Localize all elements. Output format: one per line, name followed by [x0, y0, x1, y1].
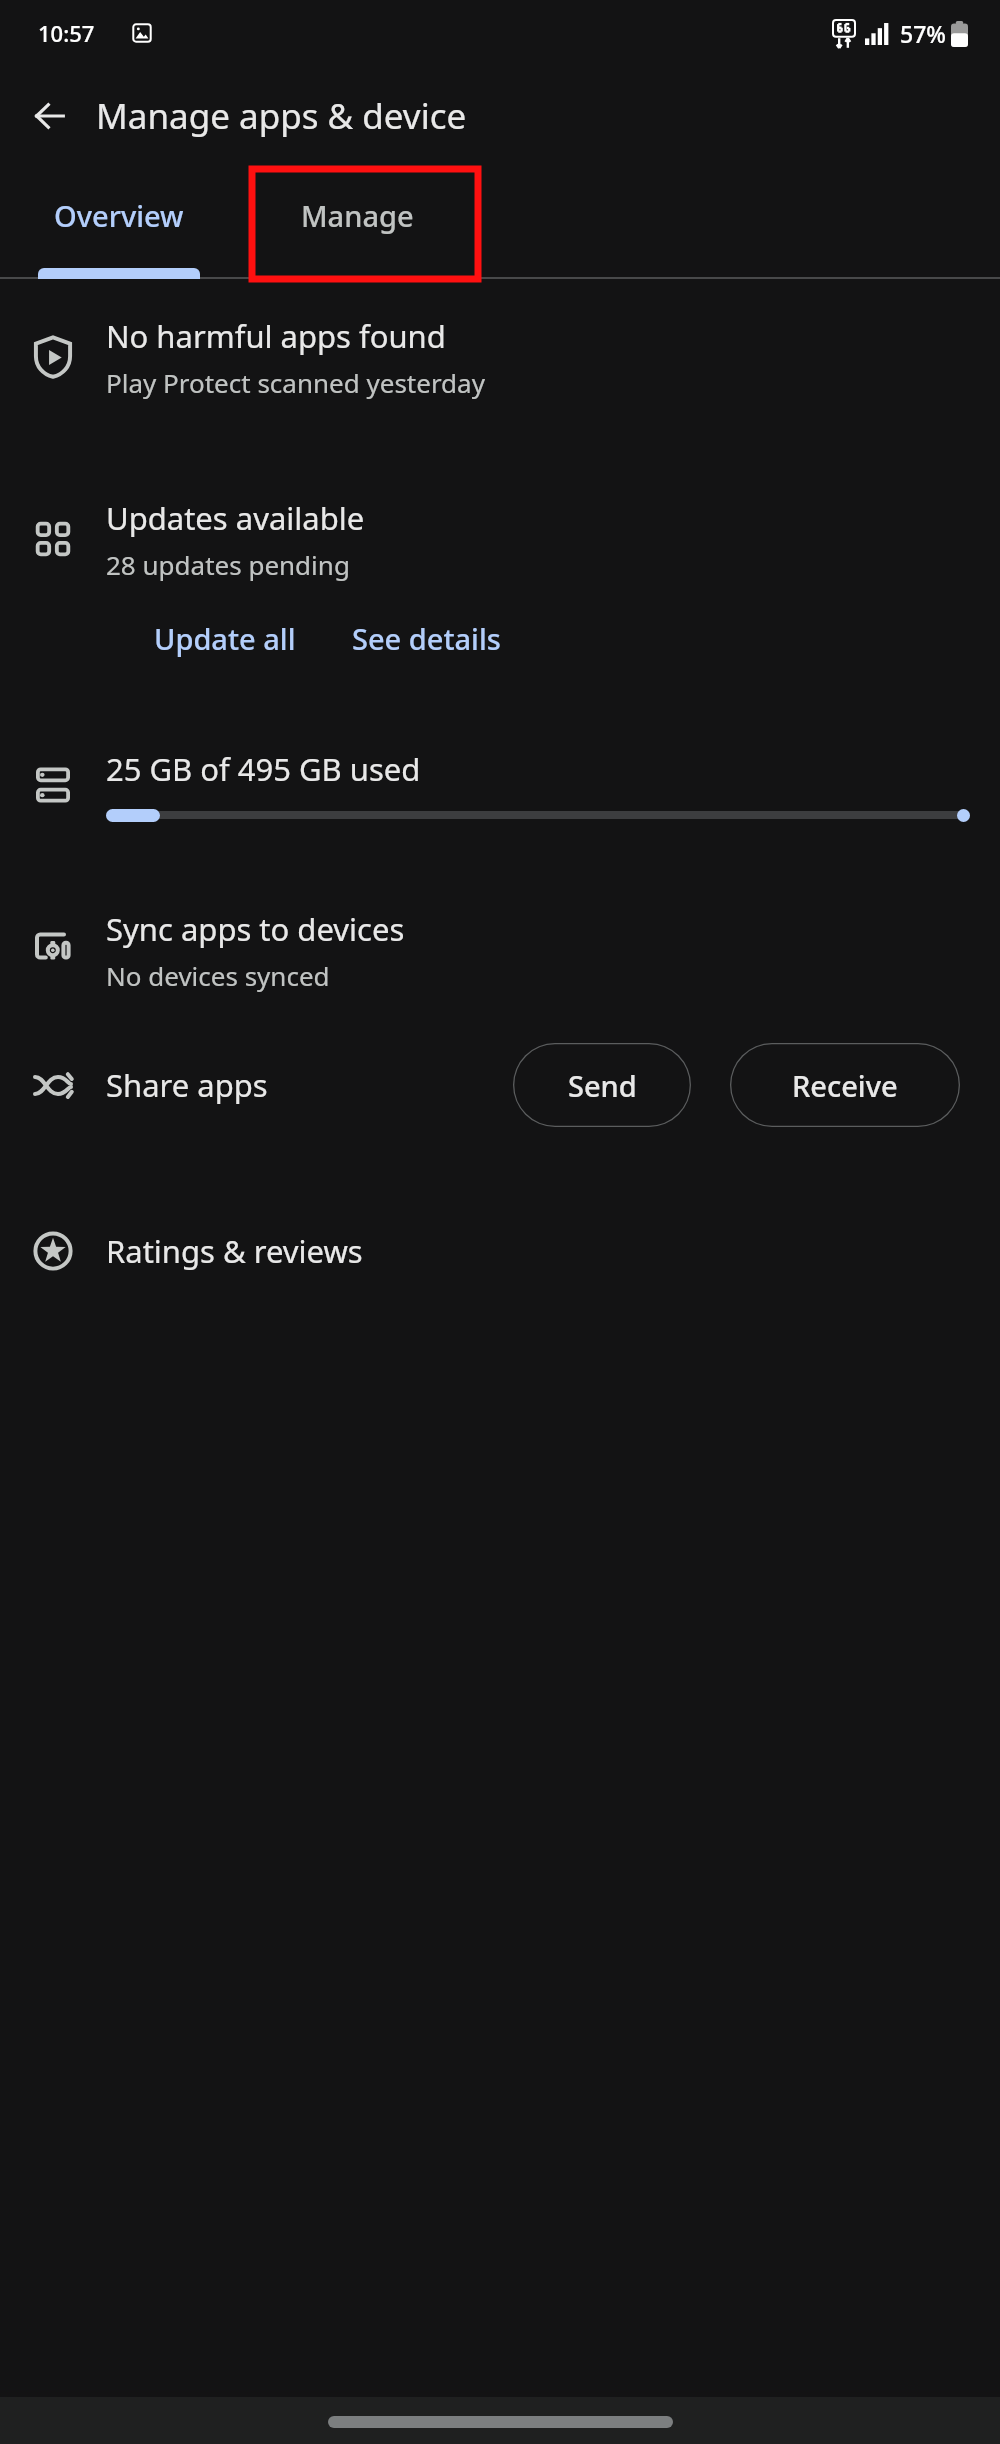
- button[interactable]: Ratings & reviews: [0, 1196, 1000, 1306]
- staticText: Update all: [154, 619, 296, 658]
- button[interactable]: Sync apps to devices: [0, 890, 1000, 1010]
- staticText: Share apps: [106, 1064, 268, 1106]
- staticText: Send: [568, 1066, 637, 1105]
- staticText: No harmful apps found: [106, 315, 446, 357]
- button[interactable]: 25 GB of 495 GB used: [0, 726, 1000, 844]
- staticText: Overview: [54, 196, 184, 235]
- button[interactable]: Back: [14, 80, 86, 152]
- staticText: No devices synced: [106, 958, 330, 993]
- button[interactable]: No harmful apps found: [0, 287, 1000, 427]
- staticText: 25 GB of 495 GB used: [106, 748, 421, 790]
- staticText: Receive: [792, 1066, 898, 1105]
- staticText: Updates available: [106, 497, 365, 539]
- button[interactable]: See details: [348, 613, 505, 664]
- button[interactable]: Overview: [0, 166, 238, 279]
- staticText: Ratings & reviews: [106, 1230, 363, 1272]
- staticText: See details: [352, 619, 501, 658]
- staticText: Manage: [301, 196, 414, 235]
- button[interactable]: Updates available: [0, 479, 1000, 599]
- staticText: 57%: [900, 18, 946, 49]
- button[interactable]: Manage: [238, 166, 476, 279]
- button[interactable]: Send: [513, 1043, 691, 1127]
- button[interactable]: Receive: [730, 1043, 960, 1127]
- staticText: 10:57: [38, 18, 95, 48]
- staticText: Manage apps & device: [96, 92, 467, 140]
- staticText: Play Protect scanned yesterday: [106, 365, 485, 400]
- staticText: Sync apps to devices: [106, 908, 405, 950]
- staticText: 28 updates pending: [106, 547, 350, 582]
- button[interactable]: Update all: [150, 613, 300, 664]
